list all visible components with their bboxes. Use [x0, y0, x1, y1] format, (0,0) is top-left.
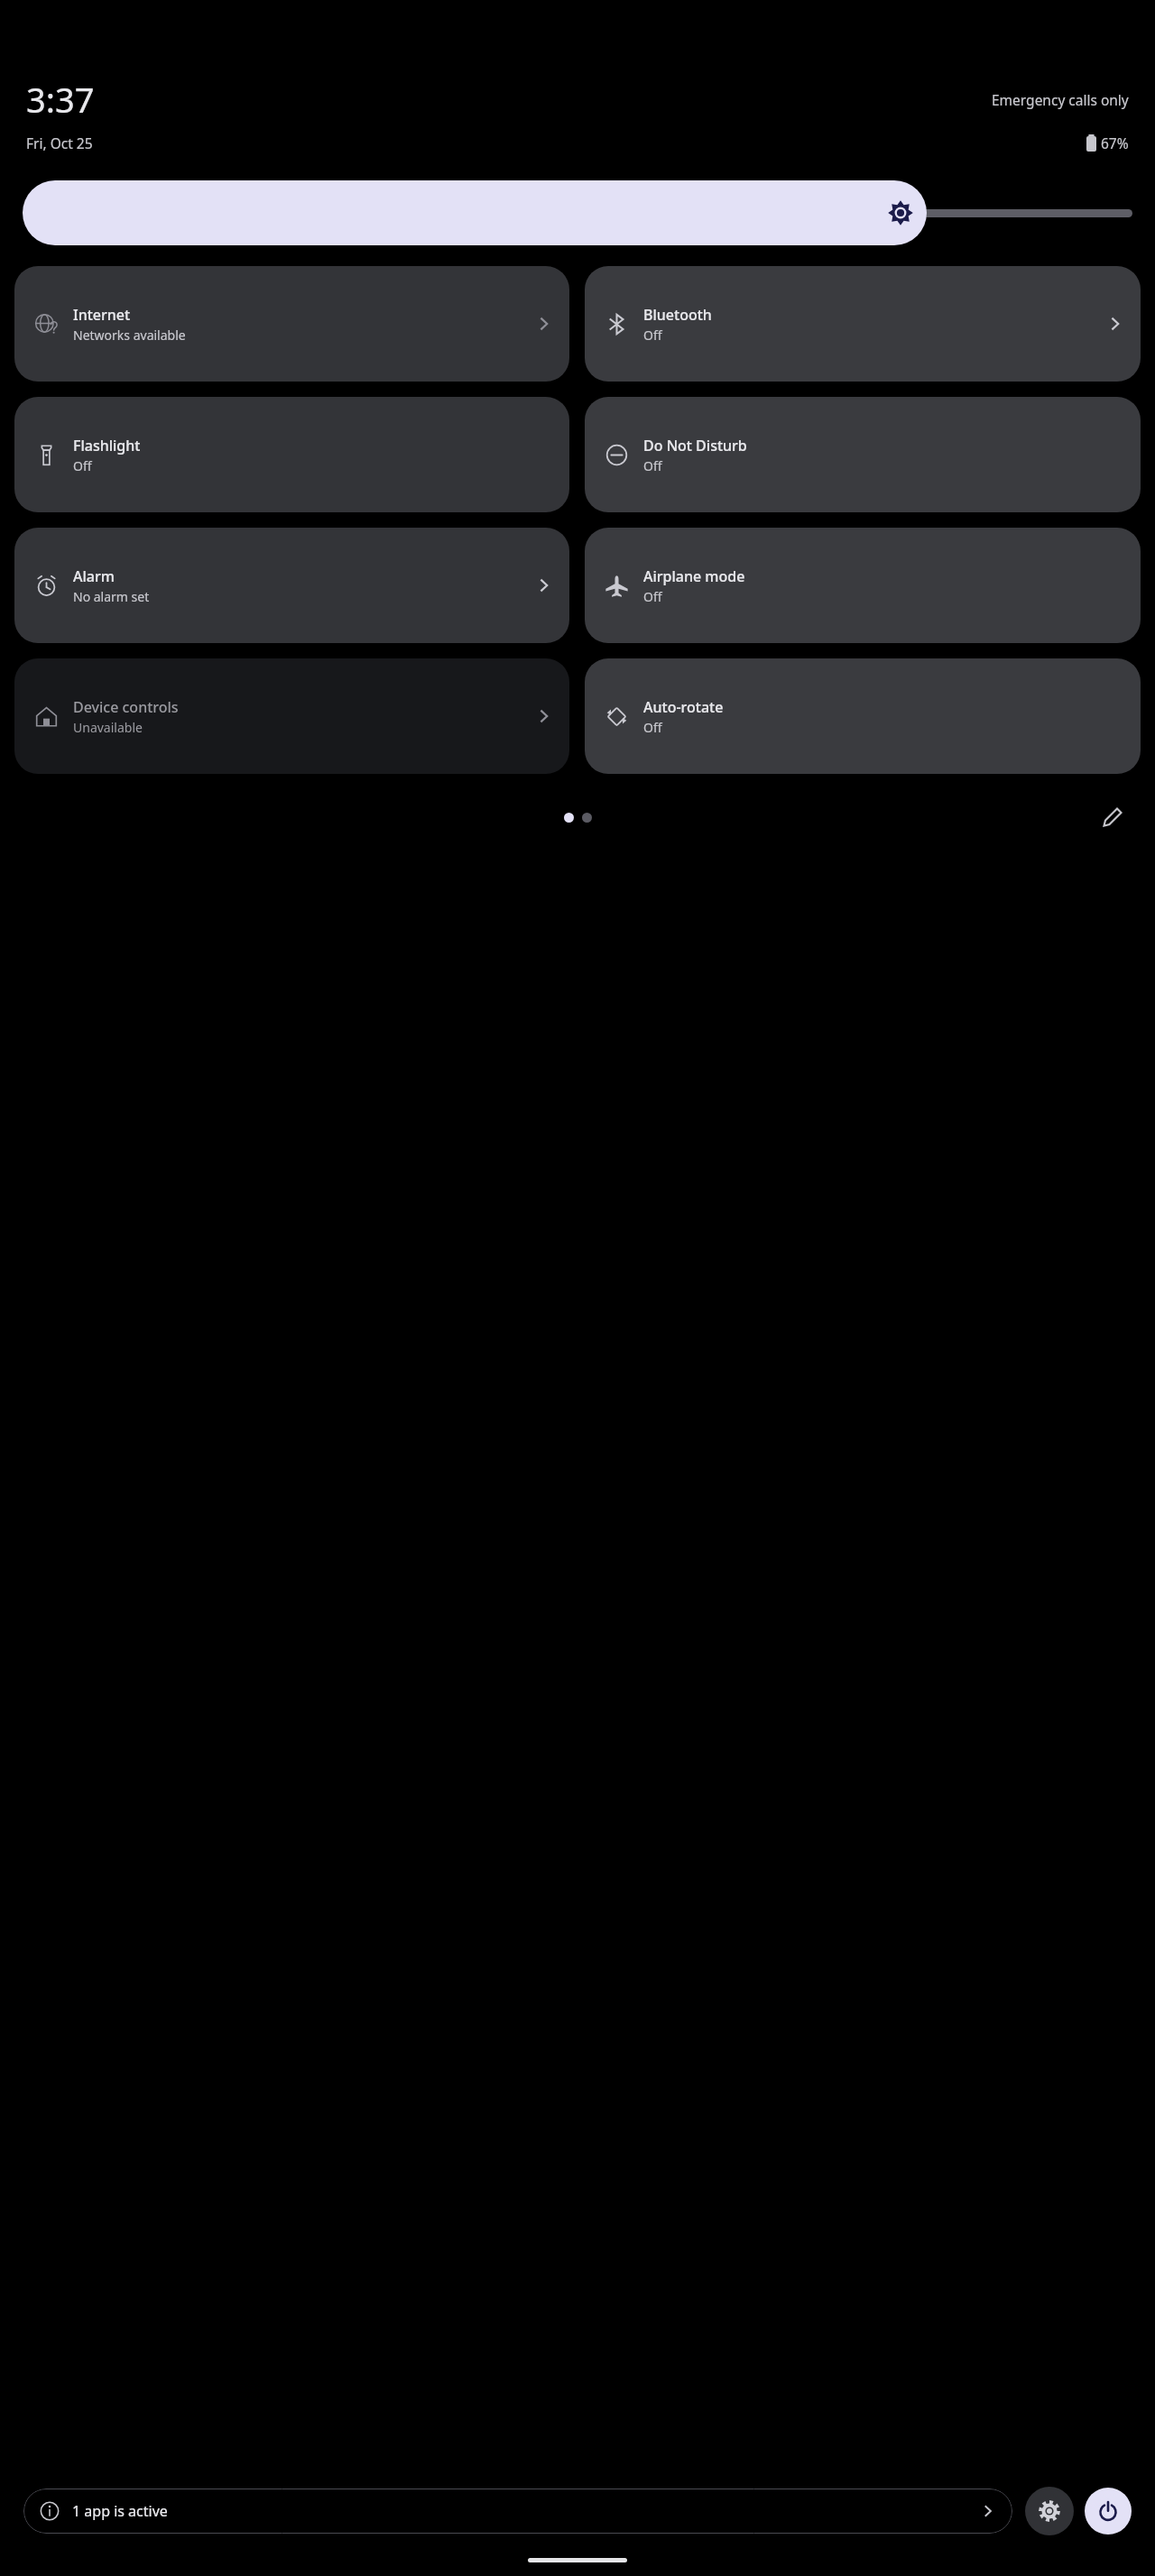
- staticText: Off: [643, 588, 662, 605]
- staticText: 67%: [1101, 133, 1129, 152]
- staticText: Airplane mode: [643, 566, 745, 586]
- button[interactable]: Auto-rotate: [585, 658, 1141, 774]
- button[interactable]: Power: [1085, 2488, 1132, 2535]
- staticText: Off: [643, 719, 662, 736]
- staticText: Fri, Oct 25: [26, 133, 93, 152]
- staticText: Do Not Disturb: [643, 436, 747, 455]
- button[interactable]: Brightness: [23, 180, 1132, 245]
- staticText: Off: [73, 457, 92, 474]
- button[interactable]: Alarm: [14, 528, 569, 643]
- staticText: 3:37: [26, 76, 95, 123]
- button[interactable]: 1 app is active: [23, 2489, 1012, 2534]
- button[interactable]: Device controls: [14, 658, 569, 774]
- staticText: Unavailable: [73, 719, 143, 736]
- staticText: Flashlight: [73, 436, 141, 455]
- staticText: Off: [643, 457, 662, 474]
- button[interactable]: Edit tiles: [1092, 797, 1132, 837]
- button[interactable]: Airplane mode: [585, 528, 1141, 643]
- staticText: Bluetooth: [643, 305, 712, 325]
- button[interactable]: Settings: [1025, 2487, 1074, 2535]
- staticText: Emergency calls only: [992, 90, 1129, 109]
- staticText: 1 app is active: [72, 2501, 168, 2521]
- staticText: Networks available: [73, 327, 186, 344]
- button[interactable]: Bluetooth: [585, 266, 1141, 382]
- button[interactable]: Do Not Disturb: [585, 397, 1141, 512]
- staticText: Internet: [73, 305, 131, 325]
- button[interactable]: Flashlight: [14, 397, 569, 512]
- staticText: Off: [643, 327, 662, 344]
- staticText: Alarm: [73, 566, 115, 586]
- button[interactable]: Internet: [14, 266, 569, 382]
- staticText: No alarm set: [73, 588, 150, 605]
- staticText: Device controls: [73, 697, 179, 717]
- staticText: Auto-rotate: [643, 697, 724, 717]
